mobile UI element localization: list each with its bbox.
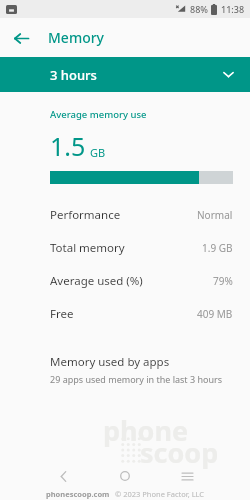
- staticText: 3 hours: [50, 66, 97, 84]
- button[interactable]: Back: [8, 25, 34, 51]
- staticText: Free: [50, 306, 74, 322]
- staticText: 29 apps used memory in the last 3 hours: [50, 373, 223, 385]
- staticText: Average memory use: [50, 108, 147, 121]
- staticText: Memory: [48, 28, 105, 47]
- staticText: 11:38: [221, 3, 245, 15]
- staticText: 1.9 GB: [202, 241, 233, 255]
- staticText: scoop: [140, 434, 219, 471]
- staticText: phonescoop.com: [46, 489, 110, 499]
- staticText: Performance: [50, 207, 121, 223]
- staticText: 409 MB: [197, 307, 233, 321]
- staticText: © 2023 Phone Factor, LLC: [115, 489, 205, 499]
- button[interactable]: Recent apps: [174, 465, 200, 487]
- button[interactable]: Memory used by apps: [0, 352, 250, 391]
- button[interactable]: 3 hours: [0, 57, 250, 92]
- button[interactable]: Average used (%): [0, 264, 250, 297]
- staticText: 79%: [213, 274, 233, 288]
- staticText: Memory used by apps: [50, 354, 170, 370]
- button[interactable]: Free: [0, 297, 250, 330]
- staticText: 88%: [190, 3, 208, 15]
- button[interactable]: Total memory: [0, 231, 250, 264]
- staticText: Average used (%): [50, 273, 143, 289]
- staticText: phone: [103, 412, 189, 449]
- button[interactable]: Performance: [0, 198, 250, 231]
- button[interactable]: Back: [50, 465, 76, 487]
- staticText: Normal: [197, 208, 233, 222]
- staticText: GB: [90, 145, 106, 160]
- staticText: 1.5: [50, 129, 86, 163]
- staticText: Total memory: [50, 240, 125, 256]
- button[interactable]: Home: [112, 465, 138, 487]
